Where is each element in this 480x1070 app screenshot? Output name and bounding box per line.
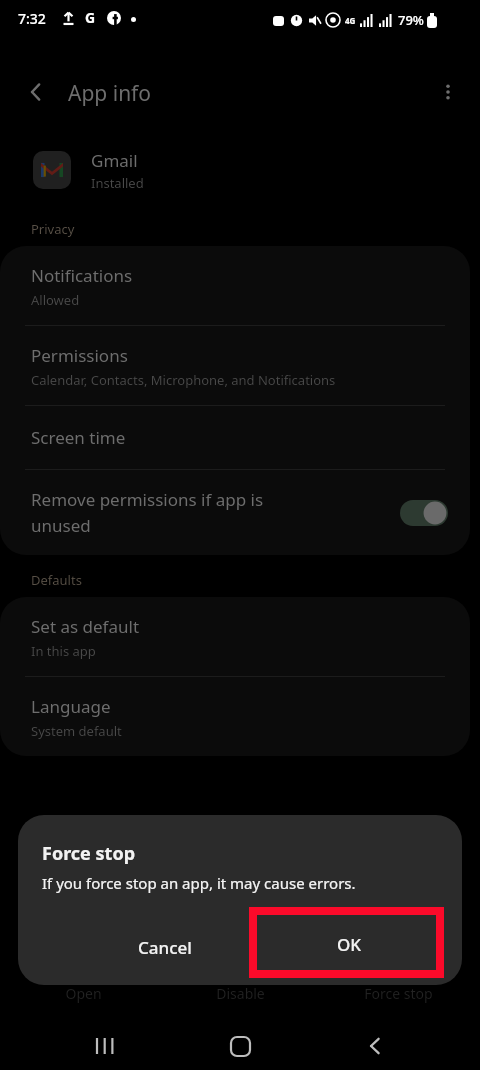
staticText: Notifications bbox=[31, 264, 133, 287]
staticText: Disable bbox=[216, 984, 265, 1003]
staticText: 4G bbox=[345, 15, 356, 26]
button[interactable]: Recent apps bbox=[85, 1026, 125, 1066]
button[interactable]: Permissions bbox=[0, 326, 470, 405]
staticText: App info bbox=[68, 79, 152, 108]
staticText: Privacy bbox=[31, 220, 75, 238]
button[interactable]: Remove permissions if app is unused bbox=[0, 470, 470, 555]
button[interactable]: Cancel bbox=[90, 919, 240, 975]
staticText: Open bbox=[65, 984, 102, 1003]
staticText: Language bbox=[31, 695, 111, 718]
button[interactable]: Force stop bbox=[323, 978, 473, 1008]
staticText: In this app bbox=[31, 642, 96, 660]
staticText: Screen time bbox=[31, 426, 126, 449]
staticText: Allowed bbox=[31, 291, 80, 309]
button[interactable]: Home bbox=[220, 1026, 260, 1066]
staticText: System default bbox=[31, 722, 122, 740]
staticText: Gmail bbox=[91, 149, 138, 172]
button[interactable]: More options bbox=[428, 72, 468, 112]
button[interactable]: Gmail bbox=[0, 142, 480, 198]
staticText: Force stop bbox=[364, 984, 433, 1003]
staticText: Permissions bbox=[31, 344, 128, 367]
button[interactable]: Notifications bbox=[0, 246, 470, 325]
staticText: Installed bbox=[91, 174, 144, 192]
staticText: OK bbox=[337, 933, 362, 956]
button[interactable]: Back bbox=[16, 72, 56, 112]
button[interactable]: Disable bbox=[165, 978, 315, 1008]
button[interactable]: OK bbox=[254, 911, 444, 977]
button[interactable]: Back bbox=[355, 1026, 395, 1066]
button[interactable]: Language bbox=[0, 677, 470, 756]
staticText: Set as default bbox=[31, 615, 140, 638]
staticText: G bbox=[85, 8, 96, 27]
staticText: If you force stop an app, it may cause e… bbox=[42, 873, 356, 893]
staticText: Cancel bbox=[138, 936, 192, 959]
staticText: Force stop bbox=[42, 841, 136, 866]
button[interactable]: Open bbox=[8, 978, 158, 1008]
staticText: Calendar, Contacts, Microphone, and Noti… bbox=[31, 371, 336, 389]
staticText: 7:32 bbox=[18, 9, 46, 28]
staticText: 79% bbox=[398, 11, 424, 29]
button[interactable]: Screen time bbox=[0, 406, 470, 469]
staticText: Defaults bbox=[31, 571, 82, 589]
staticText: Remove permissions if app is unused bbox=[31, 488, 264, 537]
button[interactable]: Set as default bbox=[0, 597, 470, 676]
